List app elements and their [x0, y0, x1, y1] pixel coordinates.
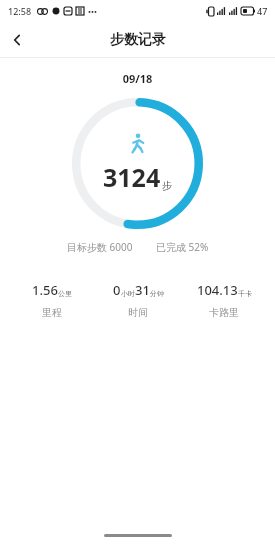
staticText: 卡路里 — [209, 306, 239, 319]
staticText: 步数记录 — [110, 31, 166, 49]
staticText: 分钟 — [150, 289, 164, 298]
staticText: 时间 — [128, 306, 148, 319]
staticText: 公里 — [58, 289, 72, 298]
button[interactable]: 1.56 — [8, 281, 95, 319]
button[interactable]: 104.13 — [181, 281, 267, 319]
staticText: 104.13 — [197, 281, 238, 299]
staticText: 3124 — [103, 160, 161, 194]
staticText: 步 — [162, 179, 172, 192]
staticText: 1.56 — [32, 281, 58, 299]
staticText: 目标步数 6000 — [67, 240, 133, 254]
staticText: 千卡 — [238, 289, 252, 298]
staticText: 已完成 52% — [156, 240, 209, 254]
staticText: 31 — [135, 281, 150, 299]
staticText: 09/18 — [0, 71, 275, 86]
staticText: 小时 — [121, 289, 135, 298]
staticText: 0 — [113, 281, 121, 299]
staticText: 里程 — [42, 306, 62, 319]
staticText: 12:58 — [8, 5, 32, 17]
staticText: 47 — [257, 5, 268, 17]
button[interactable]: 0 — [95, 281, 181, 319]
button[interactable]: Back — [0, 23, 34, 57]
